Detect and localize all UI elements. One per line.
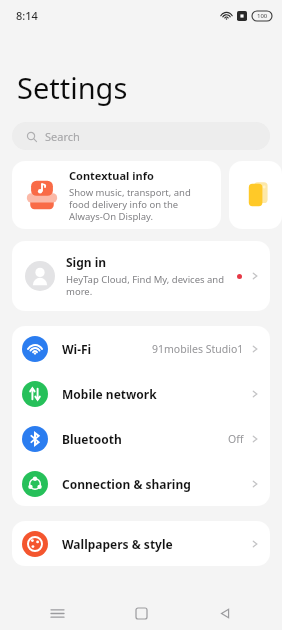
staticText: Wi-Fi bbox=[62, 341, 92, 357]
button[interactable]: Bluetooth bbox=[12, 416, 270, 461]
staticText: Sign in bbox=[66, 254, 107, 270]
button[interactable]: Wi-Fi bbox=[12, 326, 270, 371]
button[interactable]: Connection & sharing bbox=[12, 461, 270, 506]
staticText: Search bbox=[45, 129, 80, 144]
button[interactable]: Mobile network bbox=[12, 371, 270, 416]
staticText: 100 bbox=[257, 12, 268, 20]
button[interactable]: Recent apps bbox=[40, 596, 74, 630]
button[interactable]: Back bbox=[208, 596, 242, 630]
staticText: Show music, transport, and food delivery… bbox=[69, 186, 191, 223]
staticText: 8:14 bbox=[16, 8, 38, 23]
button[interactable]: Contextual info bbox=[12, 161, 221, 229]
staticText: 91mobiles Studio1 bbox=[152, 342, 244, 356]
button[interactable]: Home bbox=[124, 596, 158, 630]
staticText: Off bbox=[228, 432, 244, 446]
staticText: Settings bbox=[17, 68, 128, 107]
staticText: Bluetooth bbox=[62, 431, 122, 447]
button[interactable]: Wallpapers & style bbox=[12, 521, 270, 566]
staticText: Wallpapers & style bbox=[62, 536, 173, 552]
button[interactable]: Search bbox=[12, 122, 270, 150]
staticText: HeyTap Cloud, Find My, devices and more. bbox=[66, 273, 225, 298]
staticText: Connection & sharing bbox=[62, 476, 191, 492]
button[interactable]: Sign in bbox=[12, 241, 270, 311]
staticText: Contextual info bbox=[69, 168, 154, 183]
staticText: Mobile network bbox=[62, 386, 157, 402]
button[interactable] bbox=[229, 161, 282, 229]
